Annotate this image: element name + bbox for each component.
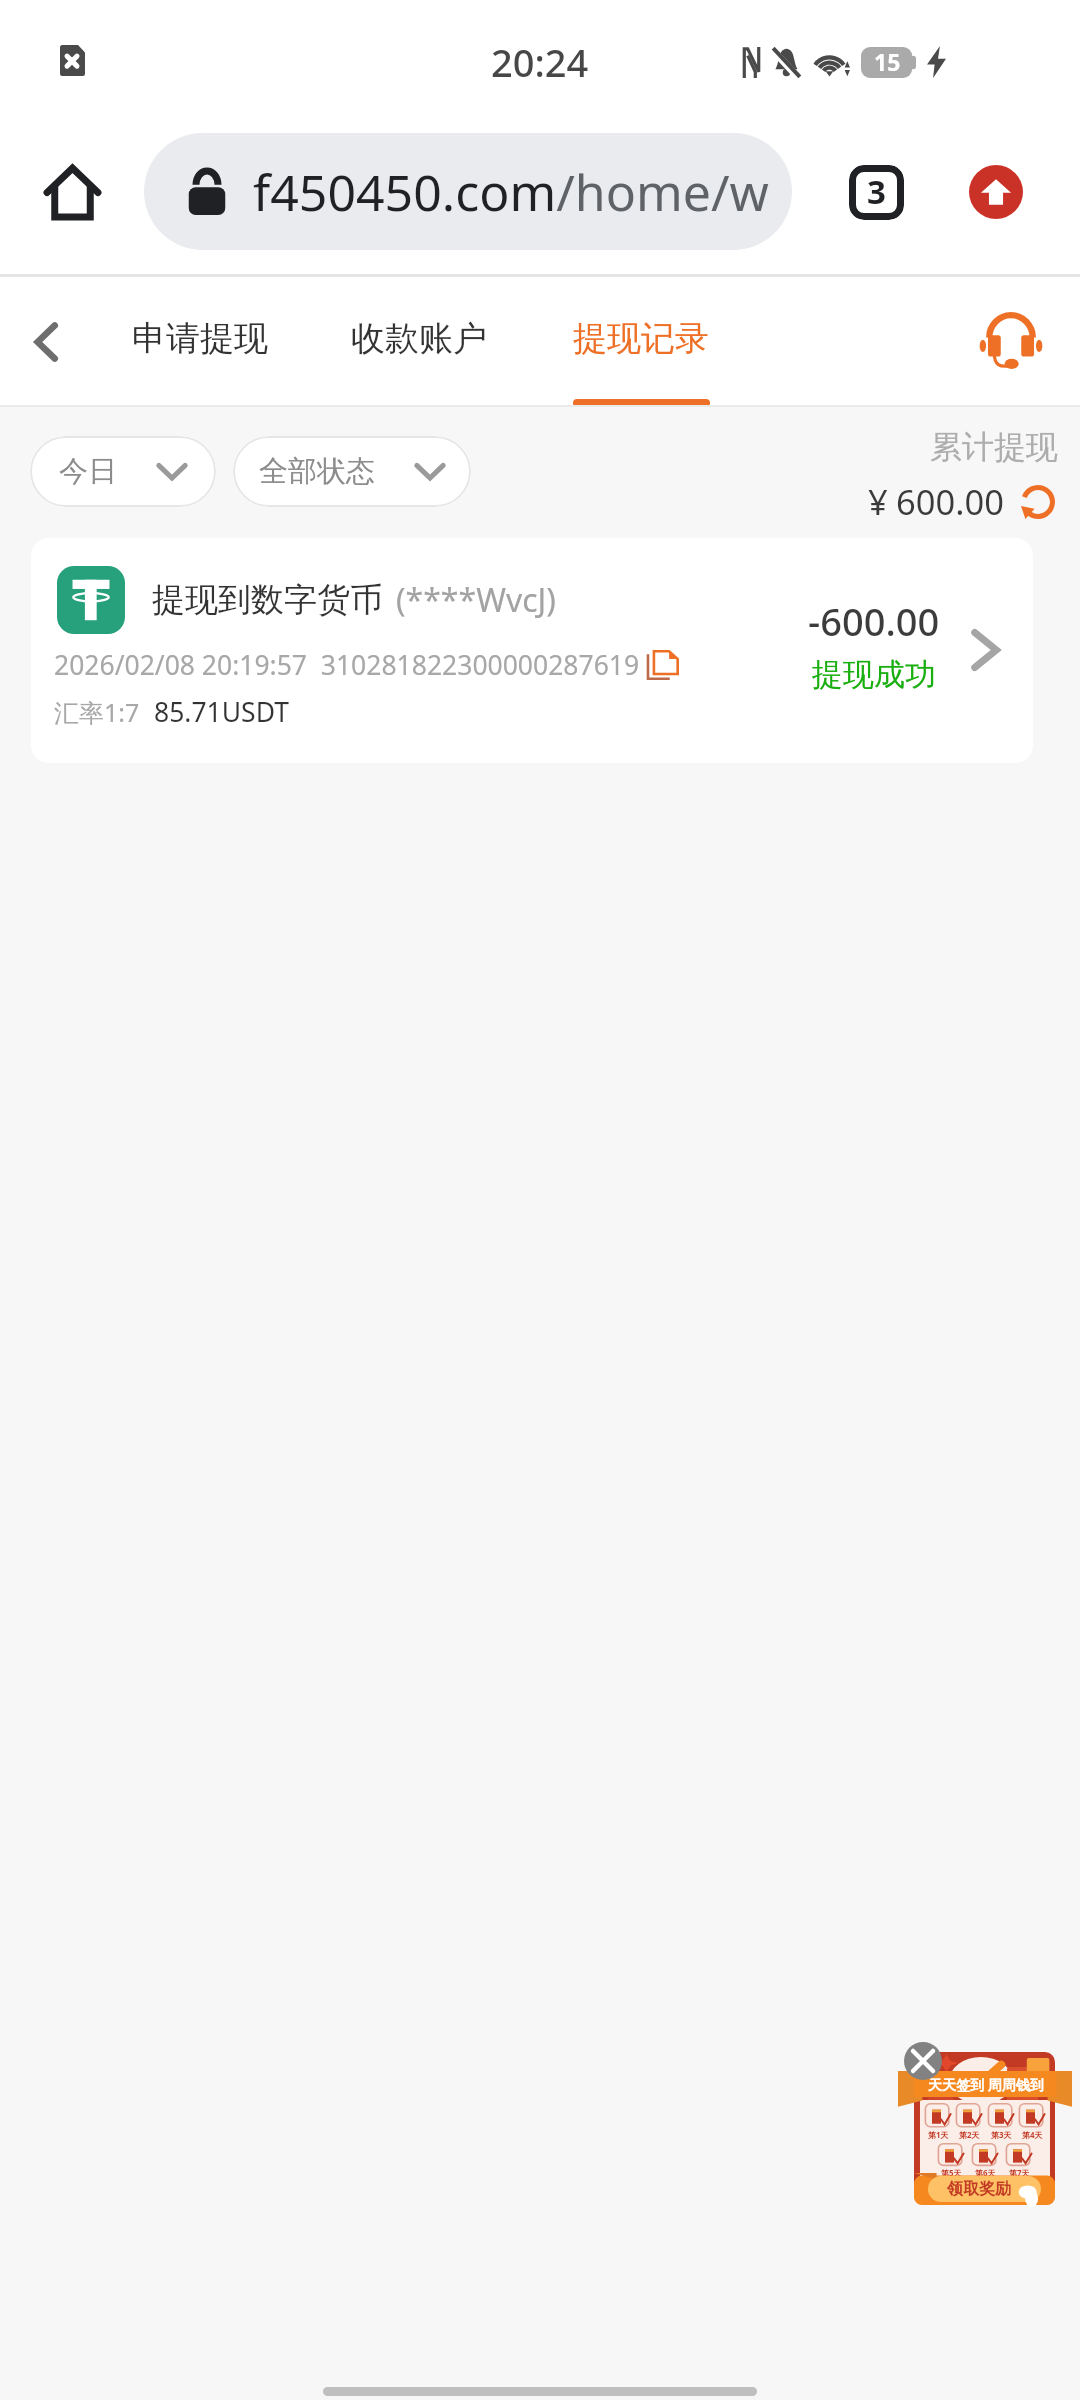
button[interactable]: Close [904,2042,942,2080]
staticText: 20:24 [491,36,589,88]
staticText: 今日 [59,453,117,490]
staticText: 提现记录 [573,317,709,360]
staticText: 第2天 [959,2129,980,2140]
staticText: -600.00 [808,595,940,647]
button[interactable]: Update [969,165,1023,219]
staticText: 15 [874,46,901,77]
staticText: 85.71USDT [154,694,289,730]
staticText: 天天签到 周周钱到 [915,2075,1057,2094]
staticText: 提现成功 [812,655,936,694]
staticText: 提现到数字货币 [152,579,383,621]
button[interactable]: Refresh [1018,482,1058,522]
button[interactable]: Back [12,308,80,376]
button[interactable]: Tabs [828,144,924,240]
staticText: 第5天 [941,2167,962,2178]
staticText: 第7天 [1009,2167,1030,2178]
staticText: 第6天 [975,2167,996,2178]
staticText: 600.00 [896,478,1004,525]
button[interactable]: 提现记录 [560,277,722,407]
staticText: f450450.com/home/w [253,158,769,226]
button[interactable]: f450450.com/home/w [144,133,792,250]
button[interactable]: 今日 [30,436,216,507]
button[interactable]: 申请提现 [119,277,281,407]
button[interactable]: Customer service [970,301,1052,383]
staticText: 第1天 [928,2129,949,2140]
staticText: 领取奖励 [947,2179,1011,2199]
staticText: 收款账户 [351,317,487,360]
staticText: 2026/02/08 20:19:57 31028182230000028761… [54,647,640,683]
button[interactable]: 全部状态 [233,436,471,507]
staticText: 全部状态 [259,453,375,490]
staticText: 3 [867,169,886,214]
staticText: ¥ [868,478,888,525]
button[interactable]: Home [27,147,117,237]
button[interactable]: 收款账户 [338,277,500,407]
staticText: 累计提现 [930,427,1058,467]
button[interactable]: Copy [646,650,679,680]
staticText: (****WvcJ) [396,578,556,622]
staticText: 第4天 [1022,2129,1043,2140]
button[interactable]: Daily check-in promotion [898,2040,1072,2210]
staticText: 汇率1:7 [54,695,140,729]
staticText: 申请提现 [132,317,268,360]
staticText: 第3天 [991,2129,1012,2140]
button[interactable]: 提现到数字货币 [31,538,1033,763]
